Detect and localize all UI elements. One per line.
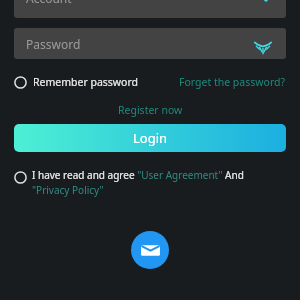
staticText: Password [26, 36, 81, 52]
staticText: Account [26, 0, 72, 6]
staticText: I have read and agree "User Agreement" A… [32, 168, 280, 197]
button[interactable]: Forget the password? [179, 75, 286, 89]
staticText: Login [133, 129, 168, 147]
button[interactable]: Email login [131, 231, 169, 269]
button[interactable]: Account [14, 0, 286, 18]
button[interactable]: Remember password [14, 75, 143, 89]
button[interactable]: Toggle password visibility [252, 33, 274, 55]
button[interactable]: Password [14, 28, 286, 59]
button[interactable]: I have read and agree "User Agreement" A… [14, 168, 280, 197]
staticText: Register now [118, 103, 183, 117]
staticText: Remember password [33, 75, 139, 89]
button[interactable]: Show account list [256, 0, 276, 8]
staticText: Forget the password? [179, 75, 286, 89]
button[interactable]: Login [14, 124, 286, 152]
button[interactable]: Register now [110, 101, 191, 119]
